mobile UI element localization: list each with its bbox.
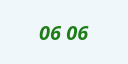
staticText: 06 06 — [39, 19, 89, 46]
